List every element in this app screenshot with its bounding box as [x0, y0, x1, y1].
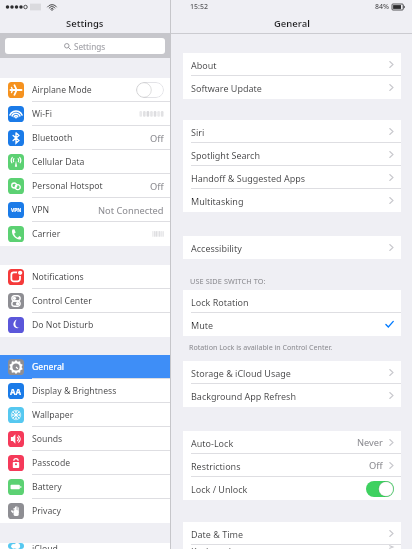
- button[interactable]: Privacy: [0, 499, 170, 523]
- staticText: Multitasking: [191, 195, 244, 207]
- button[interactable]: Mute: [183, 313, 401, 336]
- button[interactable]: Siri: [183, 120, 401, 143]
- staticText: VPN: [32, 204, 50, 216]
- button[interactable]: Cellular Data: [0, 150, 170, 174]
- staticText: Sounds: [32, 433, 63, 445]
- staticText: Mute: [191, 319, 214, 331]
- staticText: VPN: [11, 207, 22, 214]
- staticText: General: [274, 17, 310, 30]
- button[interactable]: Switch on: [366, 481, 394, 497]
- button[interactable]: Wallpaper: [0, 403, 170, 427]
- button[interactable]: General: [0, 355, 170, 379]
- staticText: Passcode: [32, 457, 71, 469]
- staticText: Control Center: [32, 295, 92, 307]
- button[interactable]: Personal Hotspot: [0, 174, 170, 198]
- staticText: Keyboard: [191, 545, 232, 549]
- staticText: Spotlight Search: [191, 149, 260, 161]
- staticText: 15:52: [190, 2, 208, 12]
- staticText: Never: [357, 436, 383, 449]
- button[interactable]: Switch off: [136, 82, 164, 98]
- button[interactable]: AA: [0, 379, 170, 403]
- staticText: Off: [150, 180, 164, 193]
- staticText: Software Update: [191, 82, 262, 94]
- button[interactable]: Accessibility: [183, 236, 401, 259]
- staticText: Handoff & Suggested Apps: [191, 172, 306, 184]
- button[interactable]: Keyboard: [183, 545, 401, 549]
- button[interactable]: Background App Refresh: [183, 384, 401, 407]
- button[interactable]: Software Update: [183, 76, 401, 99]
- button[interactable]: Spotlight Search: [183, 143, 401, 166]
- staticText: Restrictions: [191, 460, 241, 472]
- button[interactable]: Storage & iCloud Usage: [183, 361, 401, 384]
- staticText: Cellular Data: [32, 156, 85, 168]
- staticText: Wallpaper: [32, 409, 74, 421]
- staticText: iCloud: [32, 543, 58, 549]
- staticText: Wi-Fi: [32, 108, 52, 120]
- staticText: Privacy: [32, 505, 61, 517]
- staticText: Storage & iCloud Usage: [191, 367, 291, 379]
- button[interactable]: Do Not Disturb: [0, 313, 170, 337]
- staticText: Personal Hotspot: [32, 180, 103, 192]
- staticText: Battery: [32, 481, 62, 493]
- button[interactable]: About: [183, 53, 401, 76]
- button[interactable]: Control Center: [0, 289, 170, 313]
- button[interactable]: Airplane Mode: [0, 78, 170, 102]
- button[interactable]: Carrier: [0, 222, 170, 246]
- staticText: AA: [10, 386, 22, 397]
- staticText: Off: [369, 459, 383, 472]
- button[interactable]: Restrictions: [183, 454, 401, 477]
- staticText: About: [191, 59, 217, 71]
- staticText: Lock / Unlock: [191, 483, 248, 495]
- staticText: Accessibility: [191, 242, 242, 254]
- staticText: USE SIDE SWITCH TO:: [190, 276, 266, 286]
- staticText: Date & Time: [191, 528, 244, 540]
- button[interactable]: Multitasking: [183, 189, 401, 212]
- staticText: Settings: [66, 17, 104, 30]
- button[interactable]: Lock / Unlock: [183, 477, 401, 500]
- staticText: Do Not Disturb: [32, 319, 94, 331]
- button[interactable]: Battery: [0, 475, 170, 499]
- button[interactable]: Sounds: [0, 427, 170, 451]
- button[interactable]: Settings: [5, 38, 165, 54]
- button[interactable]: Passcode: [0, 451, 170, 475]
- staticText: Settings: [74, 41, 106, 52]
- staticText: Not Connected: [98, 204, 164, 217]
- staticText: Lock Rotation: [191, 296, 249, 308]
- staticText: Rotation Lock is available in Control Ce…: [189, 342, 333, 352]
- staticText: Bluetooth: [32, 132, 73, 144]
- staticText: Siri: [191, 126, 205, 138]
- staticText: Notifications: [32, 271, 84, 283]
- staticText: Auto-Lock: [191, 437, 234, 449]
- staticText: Off: [150, 132, 164, 145]
- button[interactable]: Wi-Fi: [0, 102, 170, 126]
- staticText: Airplane Mode: [32, 84, 92, 96]
- staticText: 84%: [375, 2, 389, 12]
- button[interactable]: Handoff & Suggested Apps: [183, 166, 401, 189]
- staticText: General: [32, 361, 65, 373]
- staticText: Display & Brightness: [32, 385, 117, 397]
- button[interactable]: iCloud: [0, 543, 170, 549]
- button[interactable]: Date & Time: [183, 522, 401, 545]
- staticText: Background App Refresh: [191, 390, 296, 402]
- button[interactable]: Lock Rotation: [183, 290, 401, 313]
- button[interactable]: Auto-Lock: [183, 431, 401, 454]
- button[interactable]: VPN: [0, 198, 170, 222]
- staticText: Carrier: [32, 228, 61, 240]
- button[interactable]: Notifications: [0, 265, 170, 289]
- button[interactable]: Bluetooth: [0, 126, 170, 150]
